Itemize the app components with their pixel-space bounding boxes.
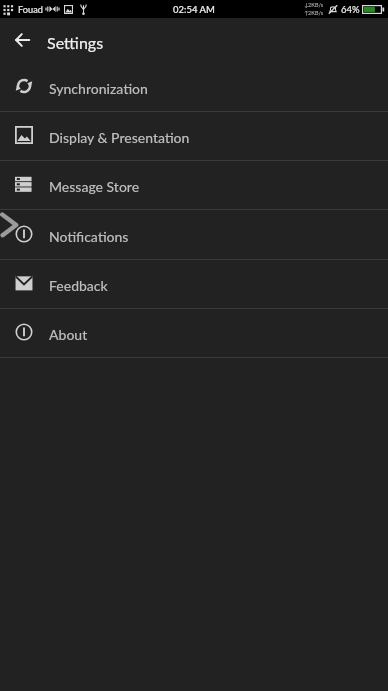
staticText: Synchronization — [49, 80, 148, 97]
button[interactable]: About — [0, 309, 388, 358]
button[interactable]: Message Store — [0, 161, 388, 210]
staticText: Fouad — [18, 4, 43, 15]
staticText: 64% — [341, 4, 360, 15]
staticText: Feedback — [49, 277, 108, 294]
button[interactable]: Feedback — [0, 260, 388, 309]
staticText: About — [49, 326, 88, 343]
button[interactable]: Synchronization — [0, 63, 388, 112]
button[interactable]: Display & Presentation — [0, 112, 388, 161]
staticText: Display & Presentation — [49, 129, 190, 146]
staticText: ↓2KB/s — [304, 2, 324, 9]
staticText: ↑2KB/s — [304, 10, 324, 17]
staticText: Message Store — [49, 178, 140, 195]
button[interactable]: Notifications — [0, 211, 388, 260]
staticText: Notifications — [49, 228, 129, 245]
staticText: 02:54 AM — [173, 4, 215, 15]
button[interactable]: Back — [0, 18, 44, 62]
staticText: Settings — [47, 33, 104, 52]
